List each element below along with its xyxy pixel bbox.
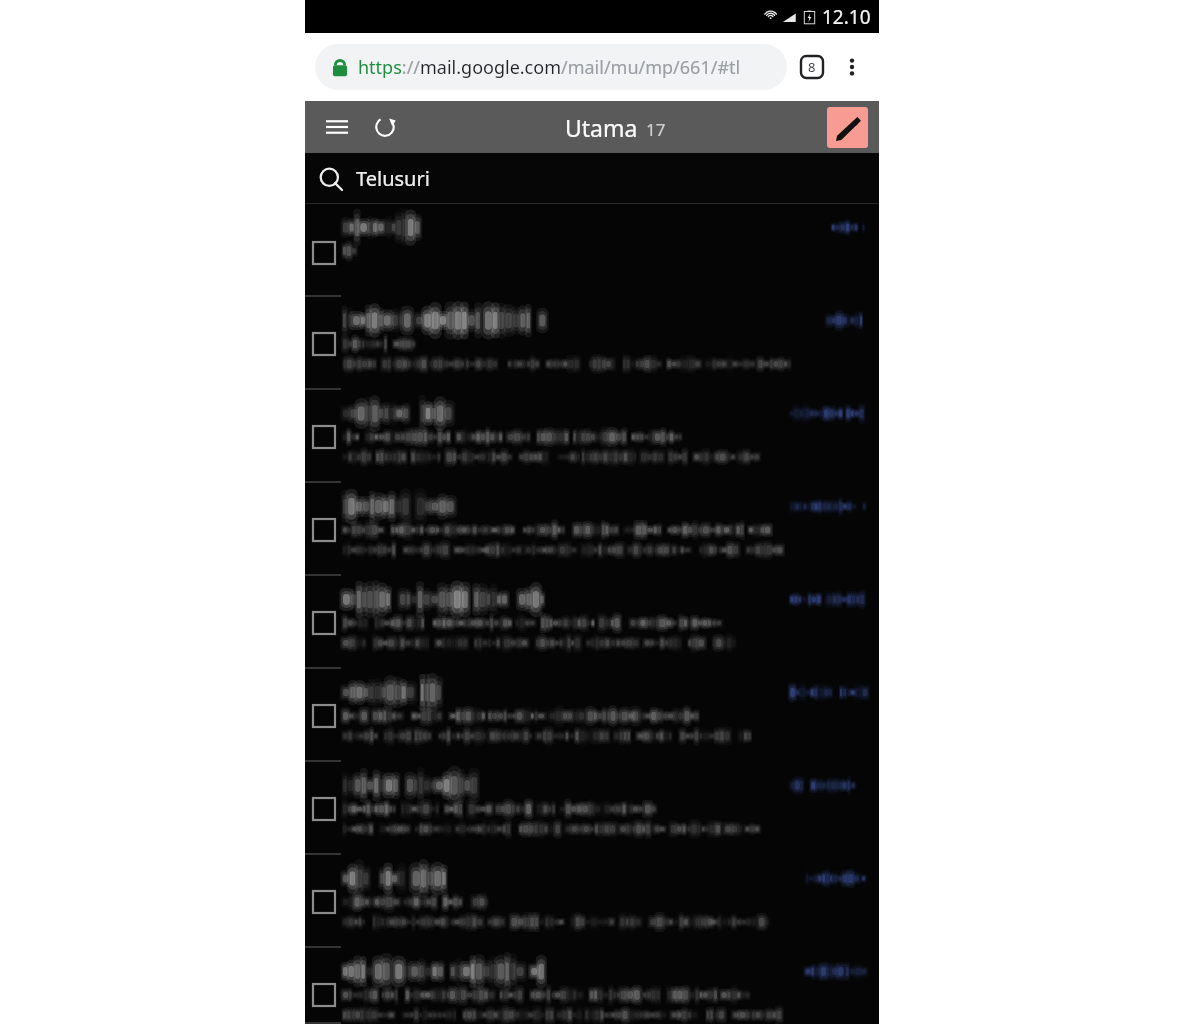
other: Select conversation — [313, 519, 335, 541]
button[interactable]: Select conversation — [305, 855, 879, 948]
button[interactable]: Select conversation — [305, 762, 879, 855]
button[interactable]: Select conversation — [305, 297, 879, 390]
button[interactable]: Tabs, 8 open — [795, 50, 829, 84]
staticText: Utama — [565, 112, 638, 143]
other: Select conversation — [313, 426, 335, 448]
button[interactable]: Select conversation — [305, 483, 879, 576]
staticText: Telusuri — [356, 165, 430, 192]
button[interactable]: Select conversation — [305, 669, 879, 762]
button[interactable]: Menu — [317, 107, 357, 147]
other: Select conversation — [313, 705, 335, 727]
button[interactable]: https://mail.google.com/mail/mu/mp/661/#… — [315, 44, 787, 90]
button[interactable]: Select conversation — [305, 390, 879, 483]
other: Select conversation — [313, 891, 335, 913]
button[interactable]: More options — [835, 50, 869, 84]
staticText: 8 — [808, 58, 816, 76]
other: Select conversation — [313, 798, 335, 820]
other: Select conversation — [313, 242, 335, 264]
staticText: 17 — [646, 118, 666, 141]
button[interactable]: Compose — [827, 107, 868, 148]
button[interactable]: Telusuri — [305, 153, 879, 204]
other: Select conversation — [313, 984, 335, 1006]
staticText: 12.10 — [822, 4, 871, 30]
other: Select conversation — [313, 612, 335, 634]
button[interactable]: Refresh — [365, 107, 405, 147]
button[interactable]: Select conversation — [305, 576, 879, 669]
button[interactable]: Select conversation — [305, 204, 879, 297]
button[interactable]: Select conversation — [305, 948, 879, 1024]
other: Select conversation — [313, 333, 335, 355]
staticText: https://mail.google.com/mail/mu/mp/661/#… — [358, 55, 741, 80]
